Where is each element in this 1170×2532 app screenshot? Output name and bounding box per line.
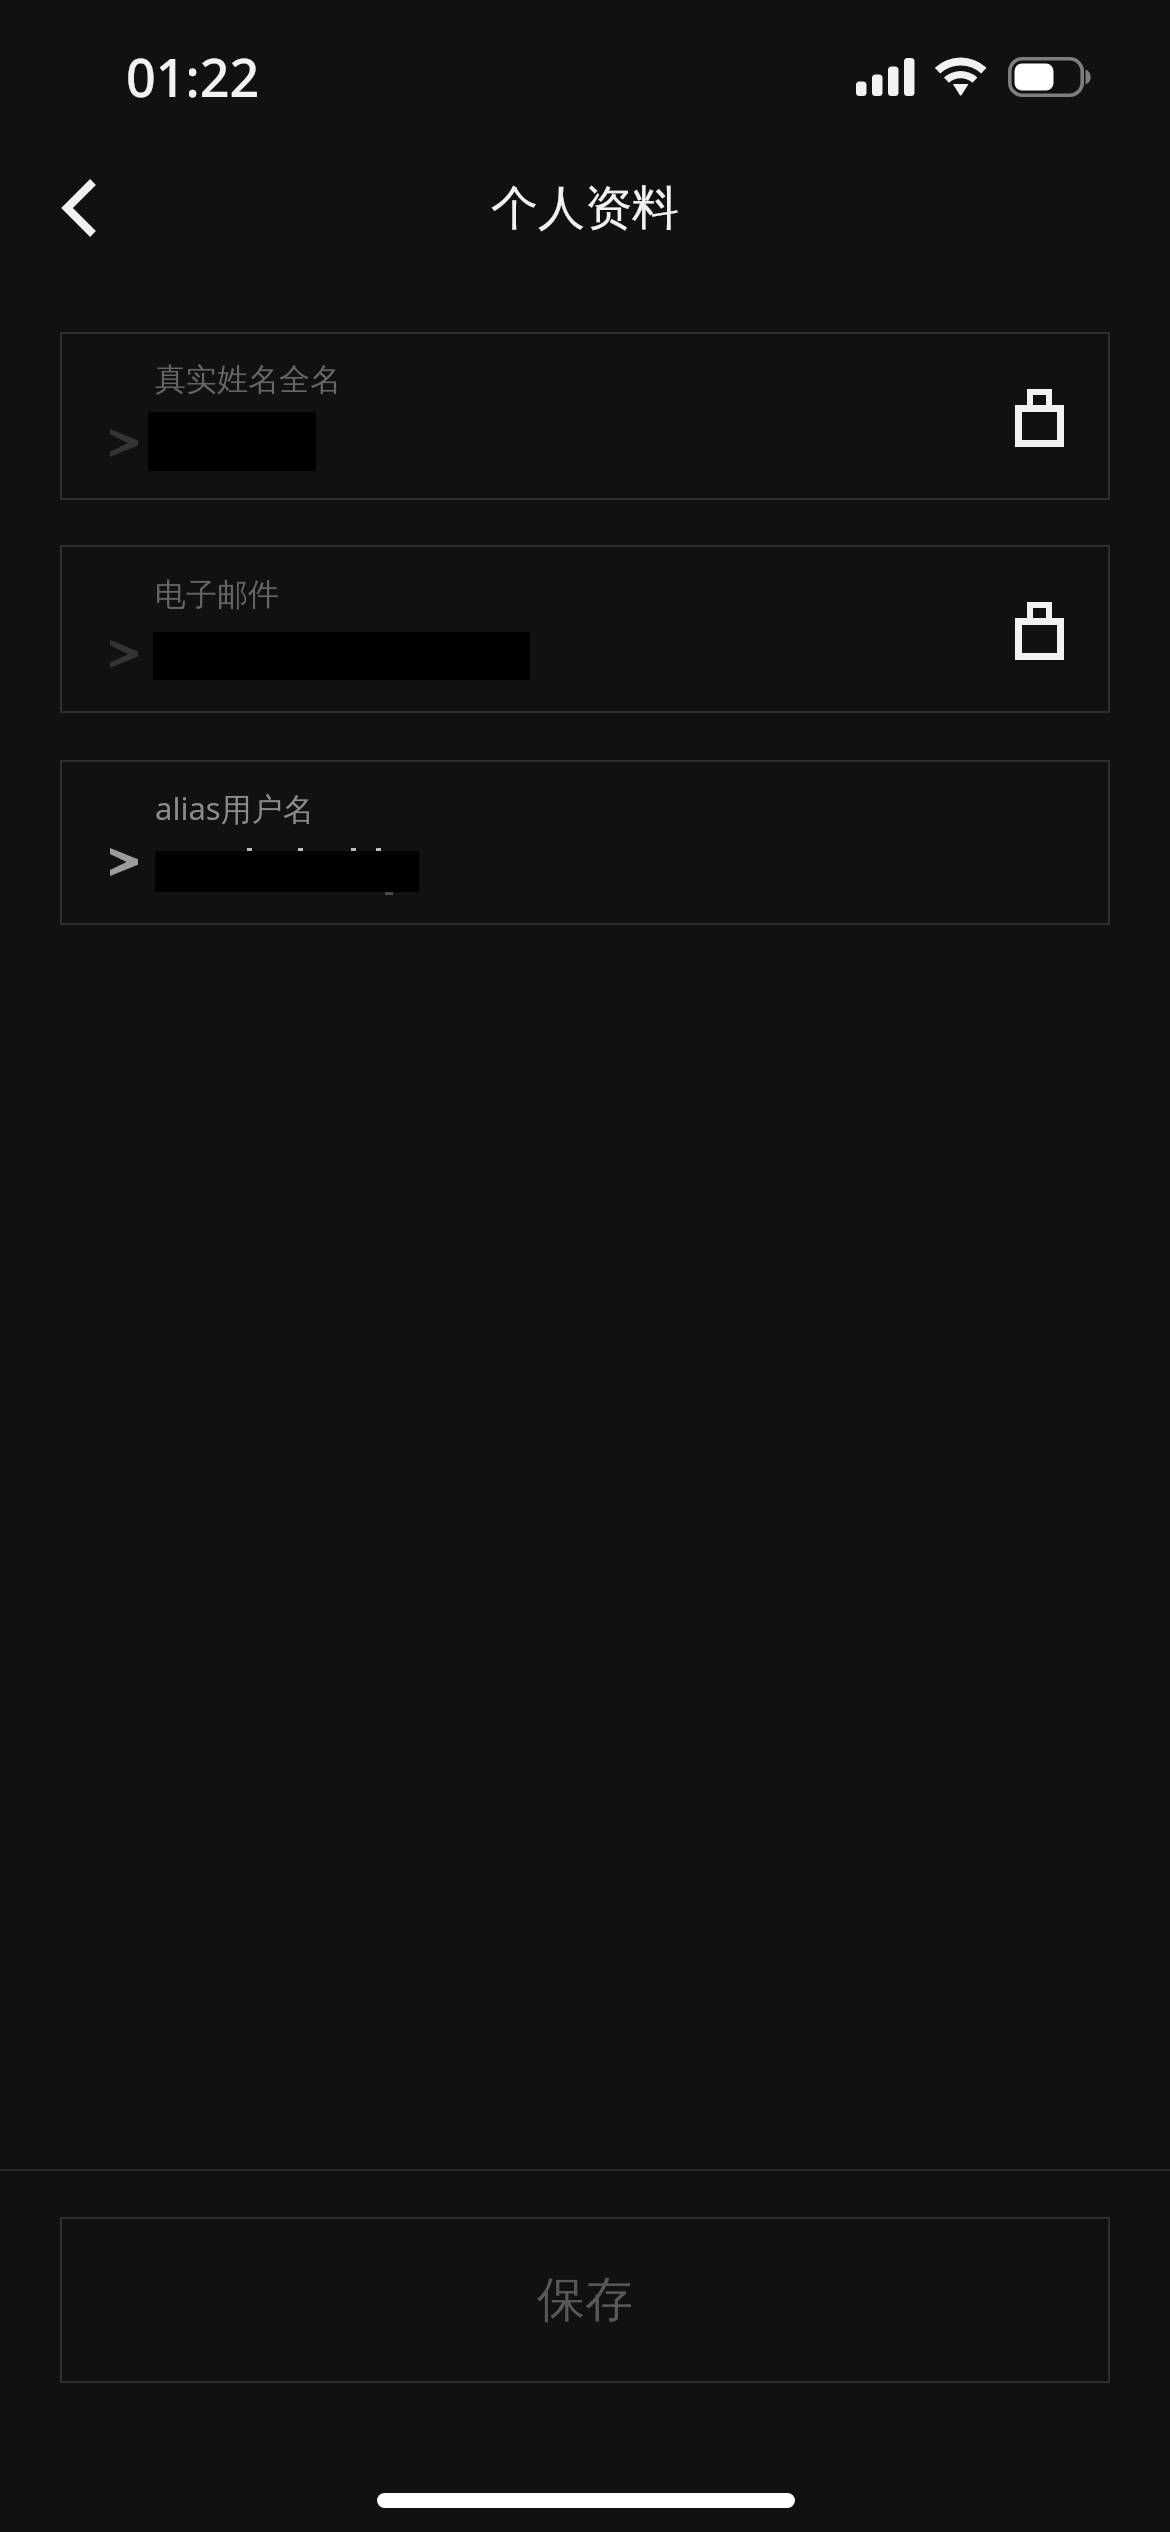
staticText: 保存 [537, 2270, 633, 2330]
staticText: 真实姓名全名 [155, 360, 341, 399]
staticText: alias用户名 [155, 787, 314, 829]
staticText: 个人资料 [491, 179, 679, 238]
button[interactable]: 真实姓名全名 [60, 332, 1110, 500]
button[interactable]: alias用户名 [60, 760, 1110, 925]
button[interactable]: 保存 [60, 2217, 1110, 2383]
button[interactable]: Locked field [990, 572, 1088, 690]
staticText: 电子邮件 [155, 575, 279, 614]
staticText: 01:22 [126, 41, 260, 112]
button[interactable]: Locked field [990, 359, 1088, 477]
button[interactable]: 电子邮件 [60, 545, 1110, 713]
button[interactable]: Back [25, 153, 135, 263]
